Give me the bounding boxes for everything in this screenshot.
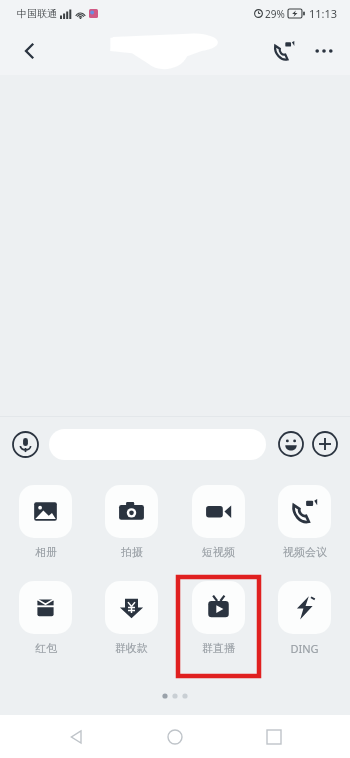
staticText: 视频会议	[283, 545, 327, 559]
button[interactable]: More options	[304, 31, 344, 71]
staticText: 短视频	[202, 545, 235, 559]
button[interactable]: 拍摄	[105, 485, 158, 559]
button[interactable]: Emoji	[276, 429, 306, 459]
button[interactable]: 短视频	[192, 485, 245, 559]
staticText: 拍摄	[121, 545, 143, 559]
button[interactable]: More functions	[310, 429, 340, 459]
button[interactable]: 红包	[19, 581, 72, 655]
button[interactable]: 群直播	[192, 581, 245, 655]
staticText: 群直播	[202, 641, 235, 655]
button[interactable]: 相册	[19, 485, 72, 559]
staticText: DING	[290, 641, 319, 656]
button[interactable]: 群收款	[105, 581, 158, 655]
button[interactable]: Recent apps	[252, 715, 296, 758]
button[interactable]: Video call	[264, 31, 304, 71]
staticText: 11:13	[309, 6, 338, 21]
button[interactable]: Home	[153, 715, 197, 758]
button[interactable]: Voice message	[10, 429, 40, 459]
staticText: 中国联通	[17, 7, 57, 20]
button[interactable]: Back	[8, 29, 52, 73]
button[interactable]: DING	[278, 581, 331, 656]
staticText: 群收款	[115, 641, 148, 655]
staticText: 29%	[265, 7, 285, 21]
staticText: 相册	[35, 545, 57, 559]
button[interactable]: Back	[55, 715, 99, 758]
button[interactable]: 视频会议	[278, 485, 331, 559]
staticText: 红包	[35, 641, 57, 655]
